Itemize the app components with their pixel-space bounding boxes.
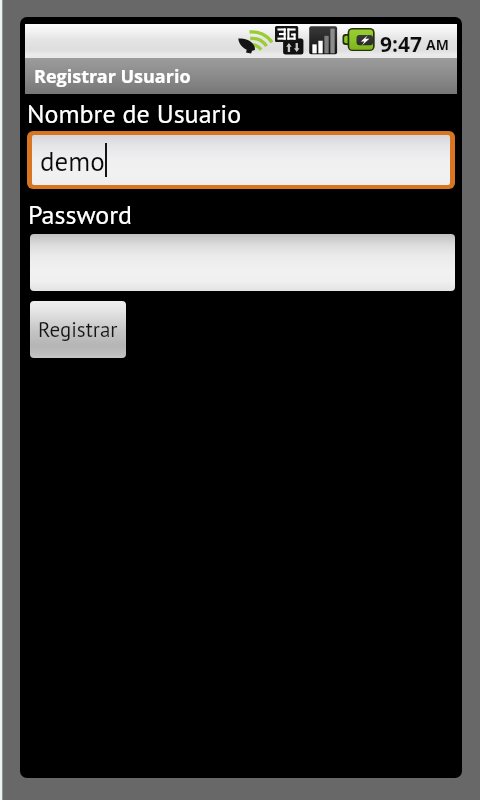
staticText: Nombre de Usuario [27, 97, 242, 131]
staticText: 9:47 [380, 30, 422, 59]
button[interactable] [30, 234, 455, 291]
staticText: Registrar Usuario [34, 64, 191, 89]
staticText: demo [40, 144, 105, 179]
staticText: Password [28, 198, 133, 232]
button[interactable]: demo [27, 131, 455, 189]
button[interactable]: Registrar [30, 301, 126, 358]
staticText: Registrar [38, 316, 118, 343]
staticText: AM [426, 35, 449, 54]
